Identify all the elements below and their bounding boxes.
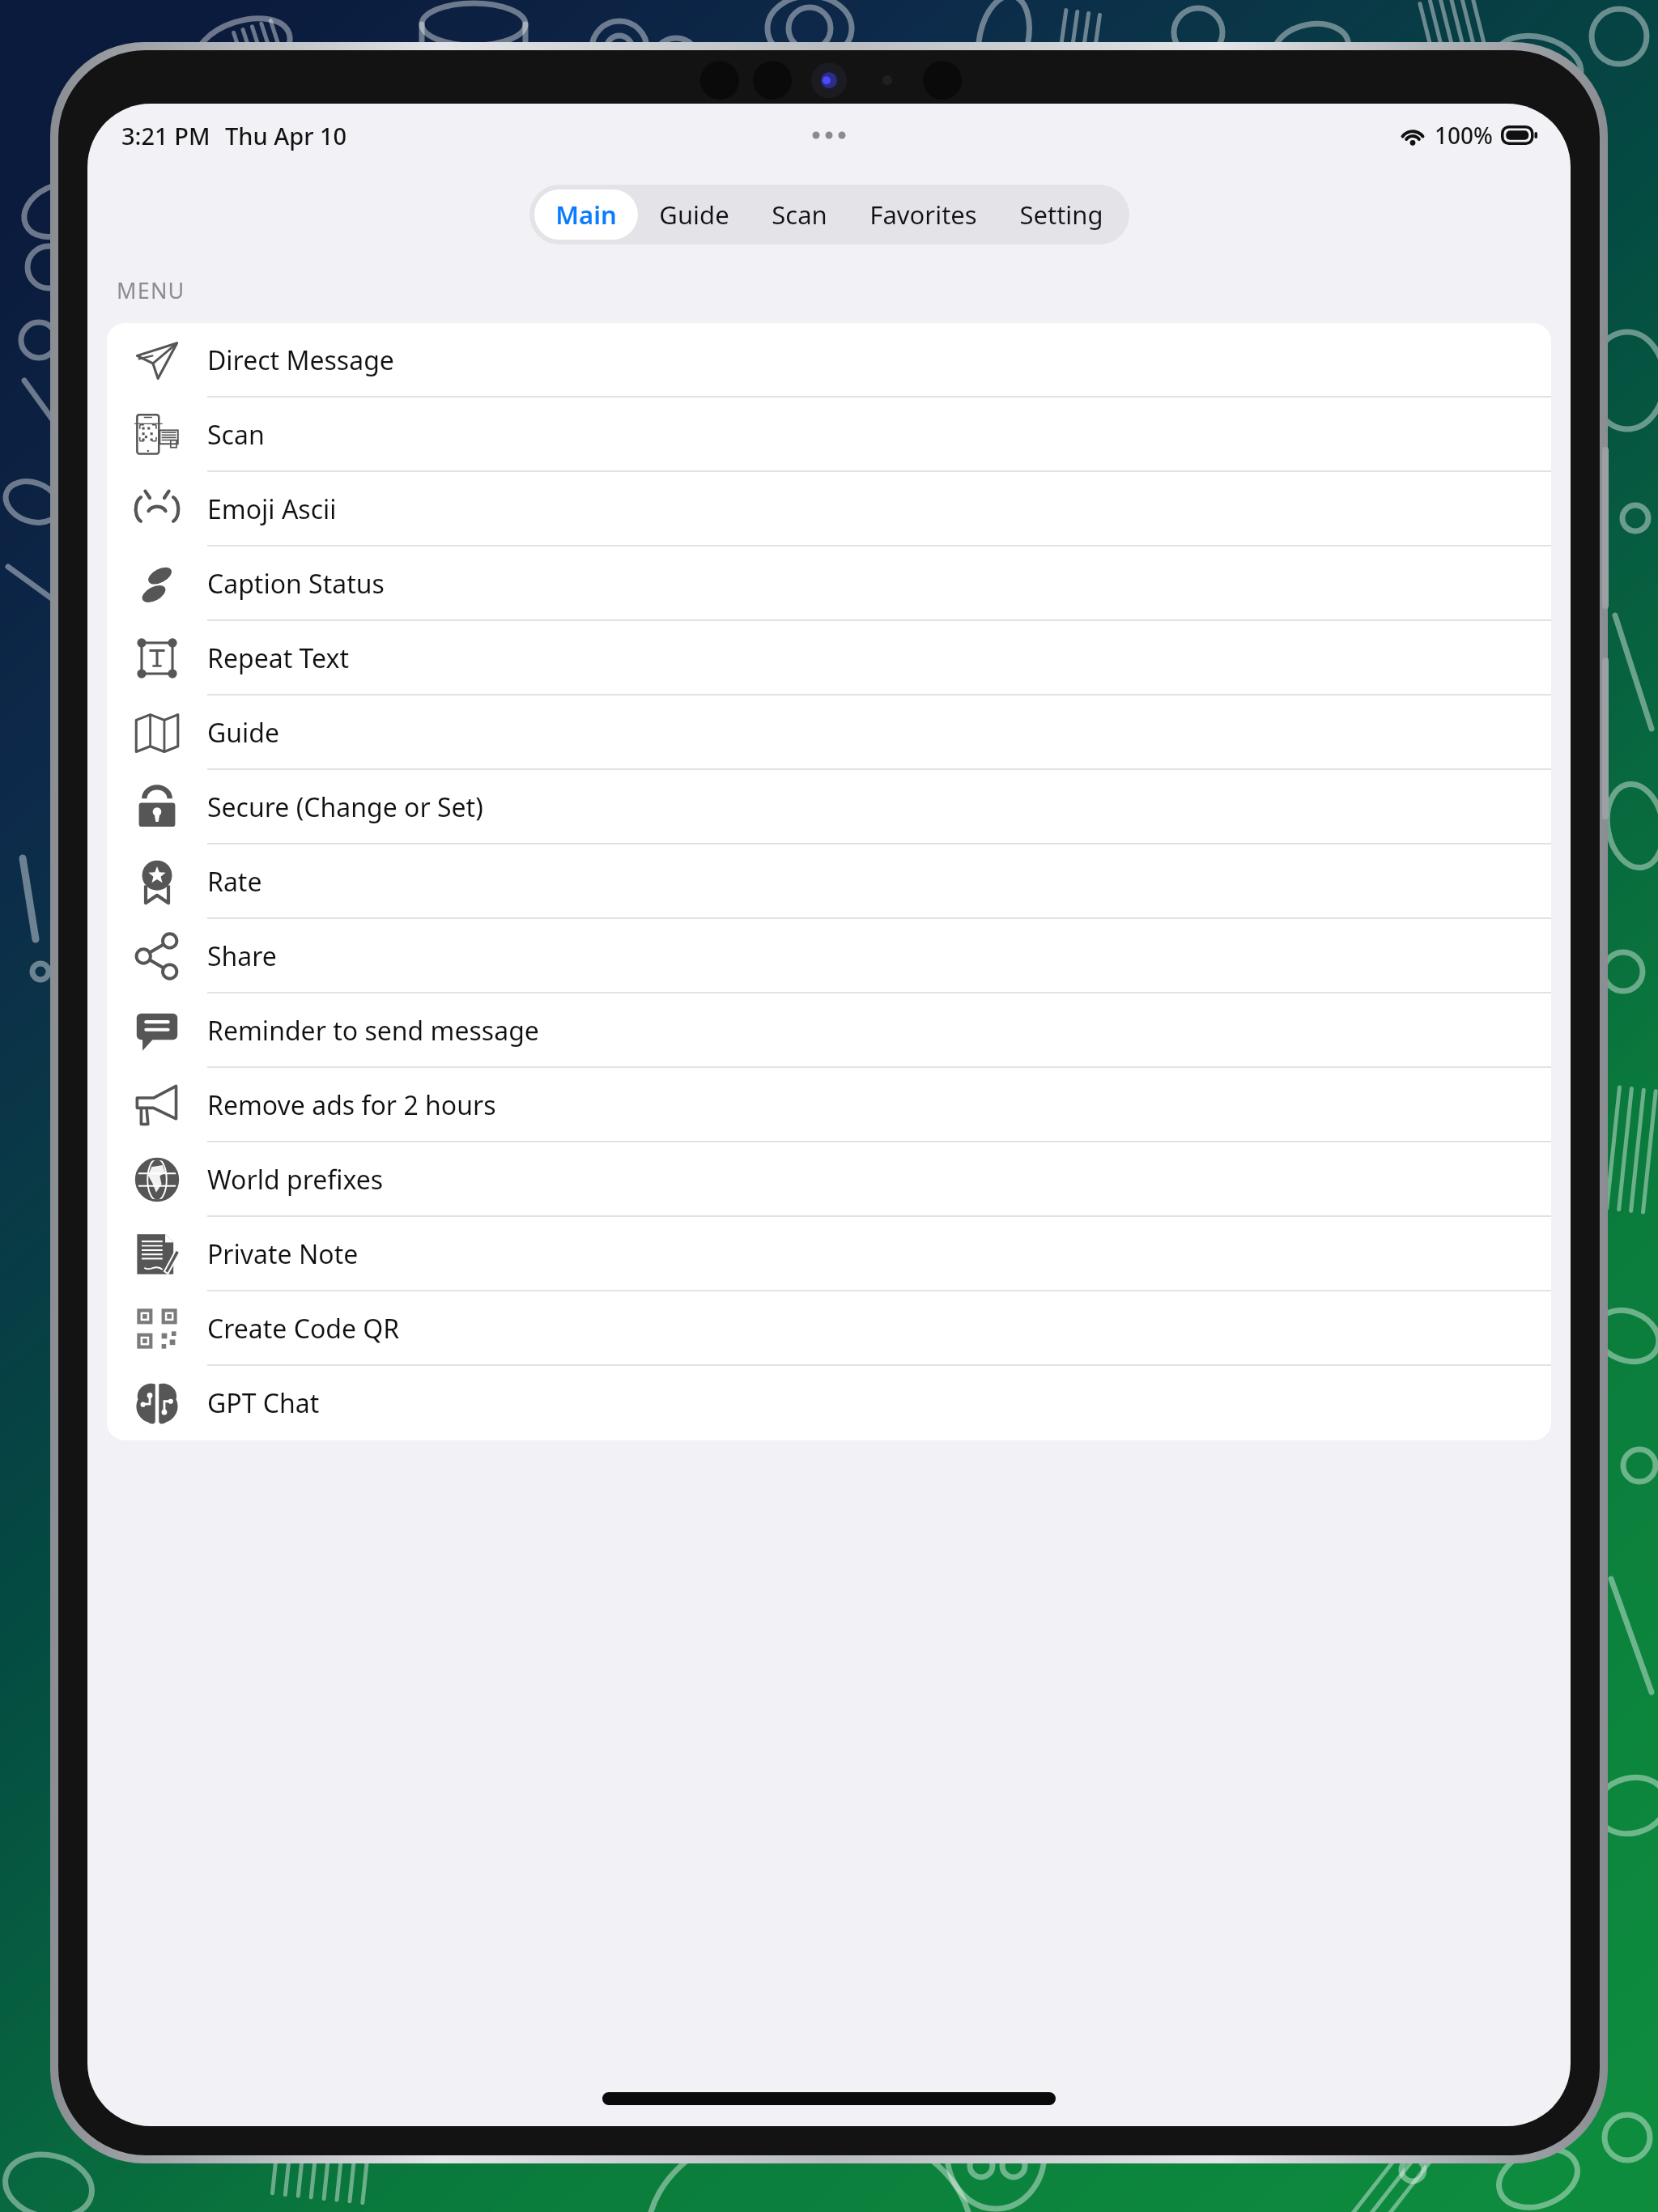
staticText: Secure (Change or Set) [207,789,483,825]
button[interactable]: Share [107,919,1551,993]
button[interactable]: Emoji Ascii [107,472,1551,547]
button[interactable]: Direct Message [107,323,1551,398]
staticText: Guide [207,715,280,751]
button[interactable]: Setting [998,189,1124,240]
staticText: Thu Apr 10 [225,120,347,151]
button[interactable]: GPT Chat [107,1366,1551,1440]
staticText: Share [207,938,277,974]
button[interactable]: Repeat Text [107,621,1551,696]
button[interactable]: Favorites [848,189,998,240]
button[interactable]: World prefixes [107,1142,1551,1217]
button[interactable]: Guide [638,189,750,240]
staticText: Scan [772,198,827,232]
staticText: Guide [659,198,729,232]
button[interactable]: Private Note [107,1217,1551,1291]
staticText: 100% [1435,120,1493,151]
button[interactable]: Reminder to send message [107,993,1551,1068]
staticText: Direct Message [207,342,394,378]
staticText: Reminder to send message [207,1013,539,1049]
staticText: Favorites [869,198,977,232]
staticText: Repeat Text [207,640,349,676]
button[interactable]: Scan [107,398,1551,472]
staticText: Setting [1019,198,1103,232]
button[interactable]: Remove ads for 2 hours [107,1068,1551,1142]
staticText: Create Code QR [207,1311,400,1346]
button[interactable]: Scan [750,189,848,240]
button[interactable]: Main [534,189,638,240]
button[interactable]: Guide [107,696,1551,770]
staticText: Rate [207,864,262,900]
button[interactable]: Rate [107,844,1551,919]
staticText: Private Note [207,1236,359,1272]
staticText: World prefixes [207,1162,384,1197]
staticText: Caption Status [207,566,385,602]
button[interactable]: Caption Status [107,547,1551,621]
staticText: Emoji Ascii [207,491,337,527]
button[interactable]: Create Code QR [107,1291,1551,1366]
staticText: GPT Chat [207,1385,320,1421]
staticText: Scan [207,417,265,453]
staticText: 3:21 PM [121,120,210,151]
staticText: Remove ads for 2 hours [207,1087,496,1123]
button[interactable]: Secure (Change or Set) [107,770,1551,844]
staticText: MENU [117,275,185,305]
staticText: Main [555,198,617,232]
